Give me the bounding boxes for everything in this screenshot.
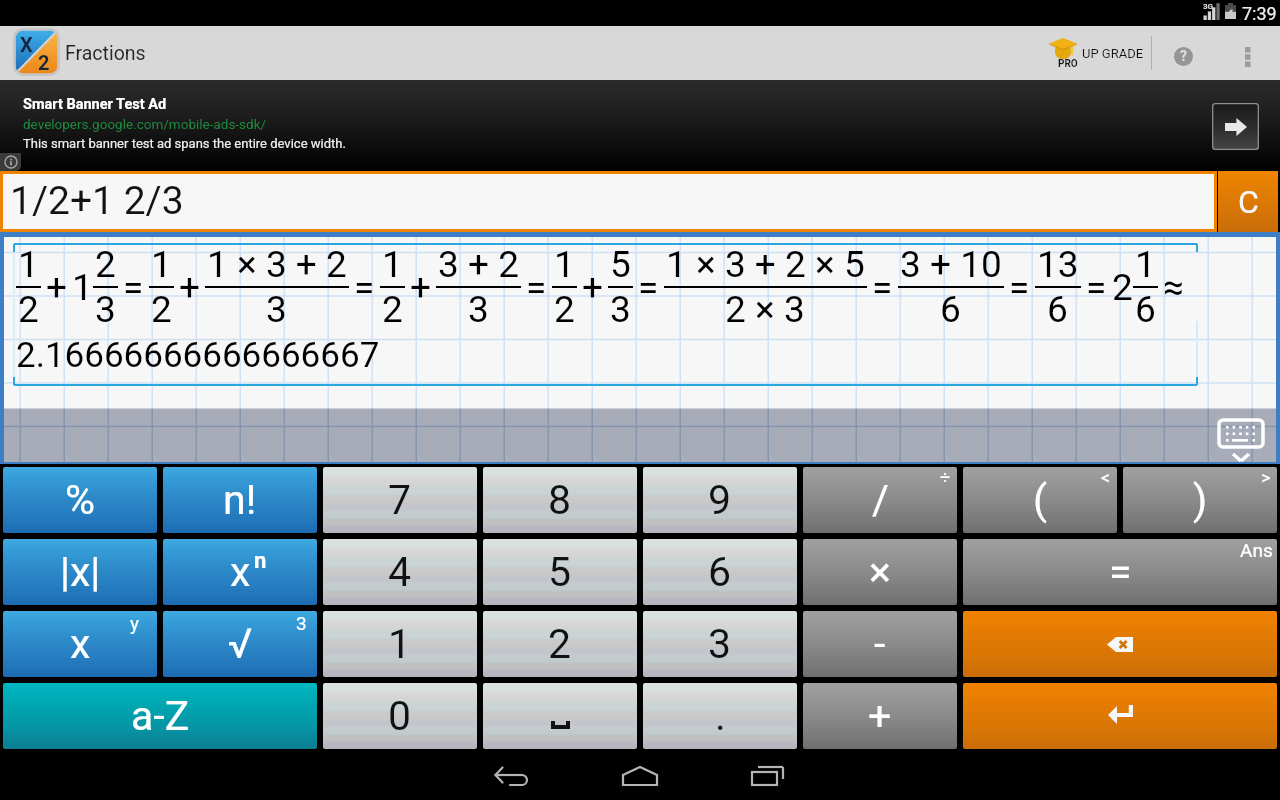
button[interactable]: Home — [576, 752, 704, 800]
staticText: 1/2+1 2/3 — [10, 178, 184, 224]
other: Space — [483, 683, 637, 749]
button[interactable]: 2 — [483, 611, 637, 677]
staticText: 1 — [388, 620, 412, 668]
staticText: Fractions — [65, 42, 146, 65]
button[interactable]: Enter — [963, 683, 1277, 749]
staticText: n — [254, 548, 267, 574]
staticText: 2 — [151, 288, 172, 331]
button[interactable]: × — [803, 539, 957, 605]
button[interactable]: 1/2+1 2/3 — [3, 174, 1214, 229]
button[interactable]: 9 — [643, 467, 797, 533]
button[interactable]: / — [803, 467, 957, 533]
button[interactable]: - — [803, 611, 957, 677]
button[interactable]: Hide keyboard — [1217, 418, 1269, 466]
staticText: 1 — [554, 243, 575, 286]
button[interactable]: 0 — [323, 683, 477, 749]
staticText: √ — [228, 620, 253, 668]
button[interactable]: Space — [483, 683, 637, 749]
staticText: 8 — [548, 476, 572, 524]
staticText: 3 + 10 — [900, 243, 1002, 286]
button[interactable]: Go to ad — [1212, 103, 1259, 150]
button[interactable]: 8 — [483, 467, 637, 533]
staticText: 1 — [18, 243, 39, 286]
staticText: / — [872, 476, 889, 524]
button[interactable]: 6 — [643, 539, 797, 605]
staticText: y — [130, 612, 139, 634]
staticText: ÷ — [940, 467, 951, 488]
staticText: 5 — [548, 548, 572, 596]
staticText: 2 — [554, 288, 575, 331]
staticText: = — [1109, 548, 1132, 596]
button[interactable]: Back — [448, 752, 576, 800]
button[interactable]: % — [3, 467, 157, 533]
staticText: = — [638, 266, 659, 309]
staticText: developers.google.com/mobile-ads-sdk/ — [23, 116, 267, 132]
button[interactable]: n! — [163, 467, 317, 533]
staticText: = — [123, 266, 144, 309]
staticText: 1 — [382, 243, 403, 286]
button[interactable]: 1 — [323, 611, 477, 677]
button[interactable]: Recent apps — [704, 752, 832, 800]
button[interactable]: 5 — [483, 539, 637, 605]
staticText: x — [70, 620, 91, 668]
button[interactable]: PRO — [1050, 32, 1152, 74]
button[interactable]: ) — [1123, 467, 1277, 533]
staticText: 1 × 3 + 2 × 5 — [666, 243, 865, 286]
staticText: = — [872, 266, 893, 309]
staticText: 3 — [708, 620, 732, 668]
staticText: n! — [223, 476, 257, 524]
staticText: 2 — [38, 51, 50, 74]
staticText: 7:39 — [1242, 3, 1277, 24]
staticText: 6 — [1047, 288, 1068, 331]
staticText: 6 — [940, 288, 961, 331]
staticText: = — [526, 266, 547, 309]
button[interactable]: 3 — [643, 611, 797, 677]
button[interactable]: . — [643, 683, 797, 749]
staticText: + — [46, 266, 67, 309]
staticText: - — [874, 620, 886, 668]
staticText: 9 — [708, 476, 732, 524]
staticText: 6 — [708, 548, 732, 596]
staticText: + — [410, 266, 431, 309]
staticText: % — [65, 476, 96, 524]
staticText: 2 × 3 — [725, 288, 805, 331]
button[interactable]: + — [803, 683, 957, 749]
staticText: + — [179, 266, 200, 309]
staticText: Ans — [1240, 539, 1273, 561]
button[interactable]: 4 — [323, 539, 477, 605]
button[interactable]: a-Z — [3, 683, 317, 749]
staticText: This smart banner test ad spans the enti… — [23, 136, 346, 151]
button[interactable]: More options — [1226, 34, 1271, 79]
staticText: + — [582, 266, 603, 309]
button[interactable]: x — [3, 611, 157, 677]
staticText: 2 — [95, 243, 116, 286]
button[interactable]: |x| — [3, 539, 157, 605]
staticText: ) — [1193, 476, 1208, 524]
button[interactable]: Backspace — [963, 611, 1277, 677]
staticText: = — [1009, 266, 1030, 309]
staticText: 3G — [1203, 2, 1214, 11]
button[interactable]: Help — [1161, 34, 1206, 79]
staticText: 6 — [1135, 288, 1156, 331]
button[interactable]: Ad information — [0, 153, 21, 171]
staticText: 3 — [296, 612, 307, 634]
staticText: . — [715, 692, 726, 740]
staticText: x — [230, 548, 251, 596]
staticText: 3 — [468, 288, 489, 331]
button[interactable]: = — [963, 539, 1277, 605]
button[interactable]: x — [163, 539, 317, 605]
staticText: 4 — [388, 548, 412, 596]
staticText: 0 — [388, 692, 412, 740]
staticText: 1 — [72, 266, 93, 309]
button[interactable]: 7 — [323, 467, 477, 533]
staticText: 2 — [548, 620, 572, 668]
staticText: a-Z — [131, 692, 190, 740]
button[interactable]: √ — [163, 611, 317, 677]
staticText: 2 — [382, 288, 403, 331]
button[interactable]: C — [1218, 171, 1278, 232]
staticText: 3 — [266, 288, 287, 331]
staticText: × — [869, 548, 891, 596]
staticText: < — [1101, 467, 1111, 488]
button[interactable]: ( — [963, 467, 1117, 533]
staticText: > — [1261, 467, 1271, 488]
